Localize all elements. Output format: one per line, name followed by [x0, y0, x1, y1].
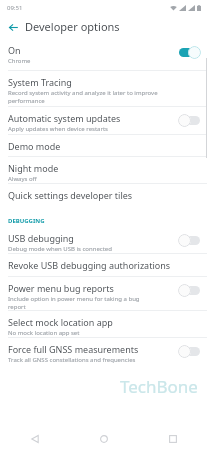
staticText: Demo mode — [8, 140, 61, 152]
staticText: Track all GNSS constellations and freque… — [8, 356, 136, 364]
staticText: Power menu bug reports — [8, 282, 114, 294]
button[interactable]: Force full GNSS measurements — [0, 338, 207, 364]
button[interactable]: Back — [0, 428, 69, 450]
staticText: Record system activity and analyze it la… — [8, 89, 158, 105]
staticText: No mock location app set — [8, 329, 80, 337]
button[interactable]: Power menu bug reports — [0, 277, 207, 311]
button[interactable]: USB debugging — [0, 227, 207, 254]
staticText: 09:51 — [7, 4, 23, 12]
button[interactable]: Demo mode — [0, 135, 207, 157]
staticText: Include option in power menu for taking … — [8, 295, 140, 311]
staticText: Night mode — [8, 162, 59, 174]
staticText: DEBUGGING — [8, 217, 45, 225]
button[interactable]: Select mock location app — [0, 311, 207, 338]
button[interactable]: Automatic system updates — [0, 107, 207, 135]
button[interactable]: Night mode — [0, 157, 207, 184]
staticText: Select mock location app — [8, 316, 113, 328]
staticText: Always off — [8, 175, 37, 183]
staticText: Developer options — [25, 19, 120, 34]
staticText: Chrome — [8, 57, 31, 65]
staticText: Quick settings developer tiles — [8, 189, 133, 201]
staticText: Debug mode when USB is connected — [8, 245, 112, 253]
button[interactable]: Home — [69, 428, 138, 450]
staticText: System Tracing — [8, 76, 72, 88]
staticText: Automatic system updates — [8, 112, 121, 124]
button[interactable]: System Tracing — [0, 71, 207, 107]
staticText: Force full GNSS measurements — [8, 343, 139, 355]
staticText: On — [8, 44, 21, 56]
button[interactable]: Revoke USB debugging authorizations — [0, 254, 207, 277]
button[interactable]: Quick settings developer tiles — [0, 184, 207, 207]
staticText: USB debugging — [8, 232, 74, 244]
staticText: Revoke USB debugging authorizations — [8, 259, 171, 271]
staticText: Apply updates when device restarts — [8, 125, 108, 133]
staticText: TechBone — [120, 375, 198, 398]
button[interactable]: Recent apps — [138, 428, 207, 450]
button[interactable]: On — [0, 40, 207, 71]
button[interactable]: Back — [6, 20, 20, 34]
